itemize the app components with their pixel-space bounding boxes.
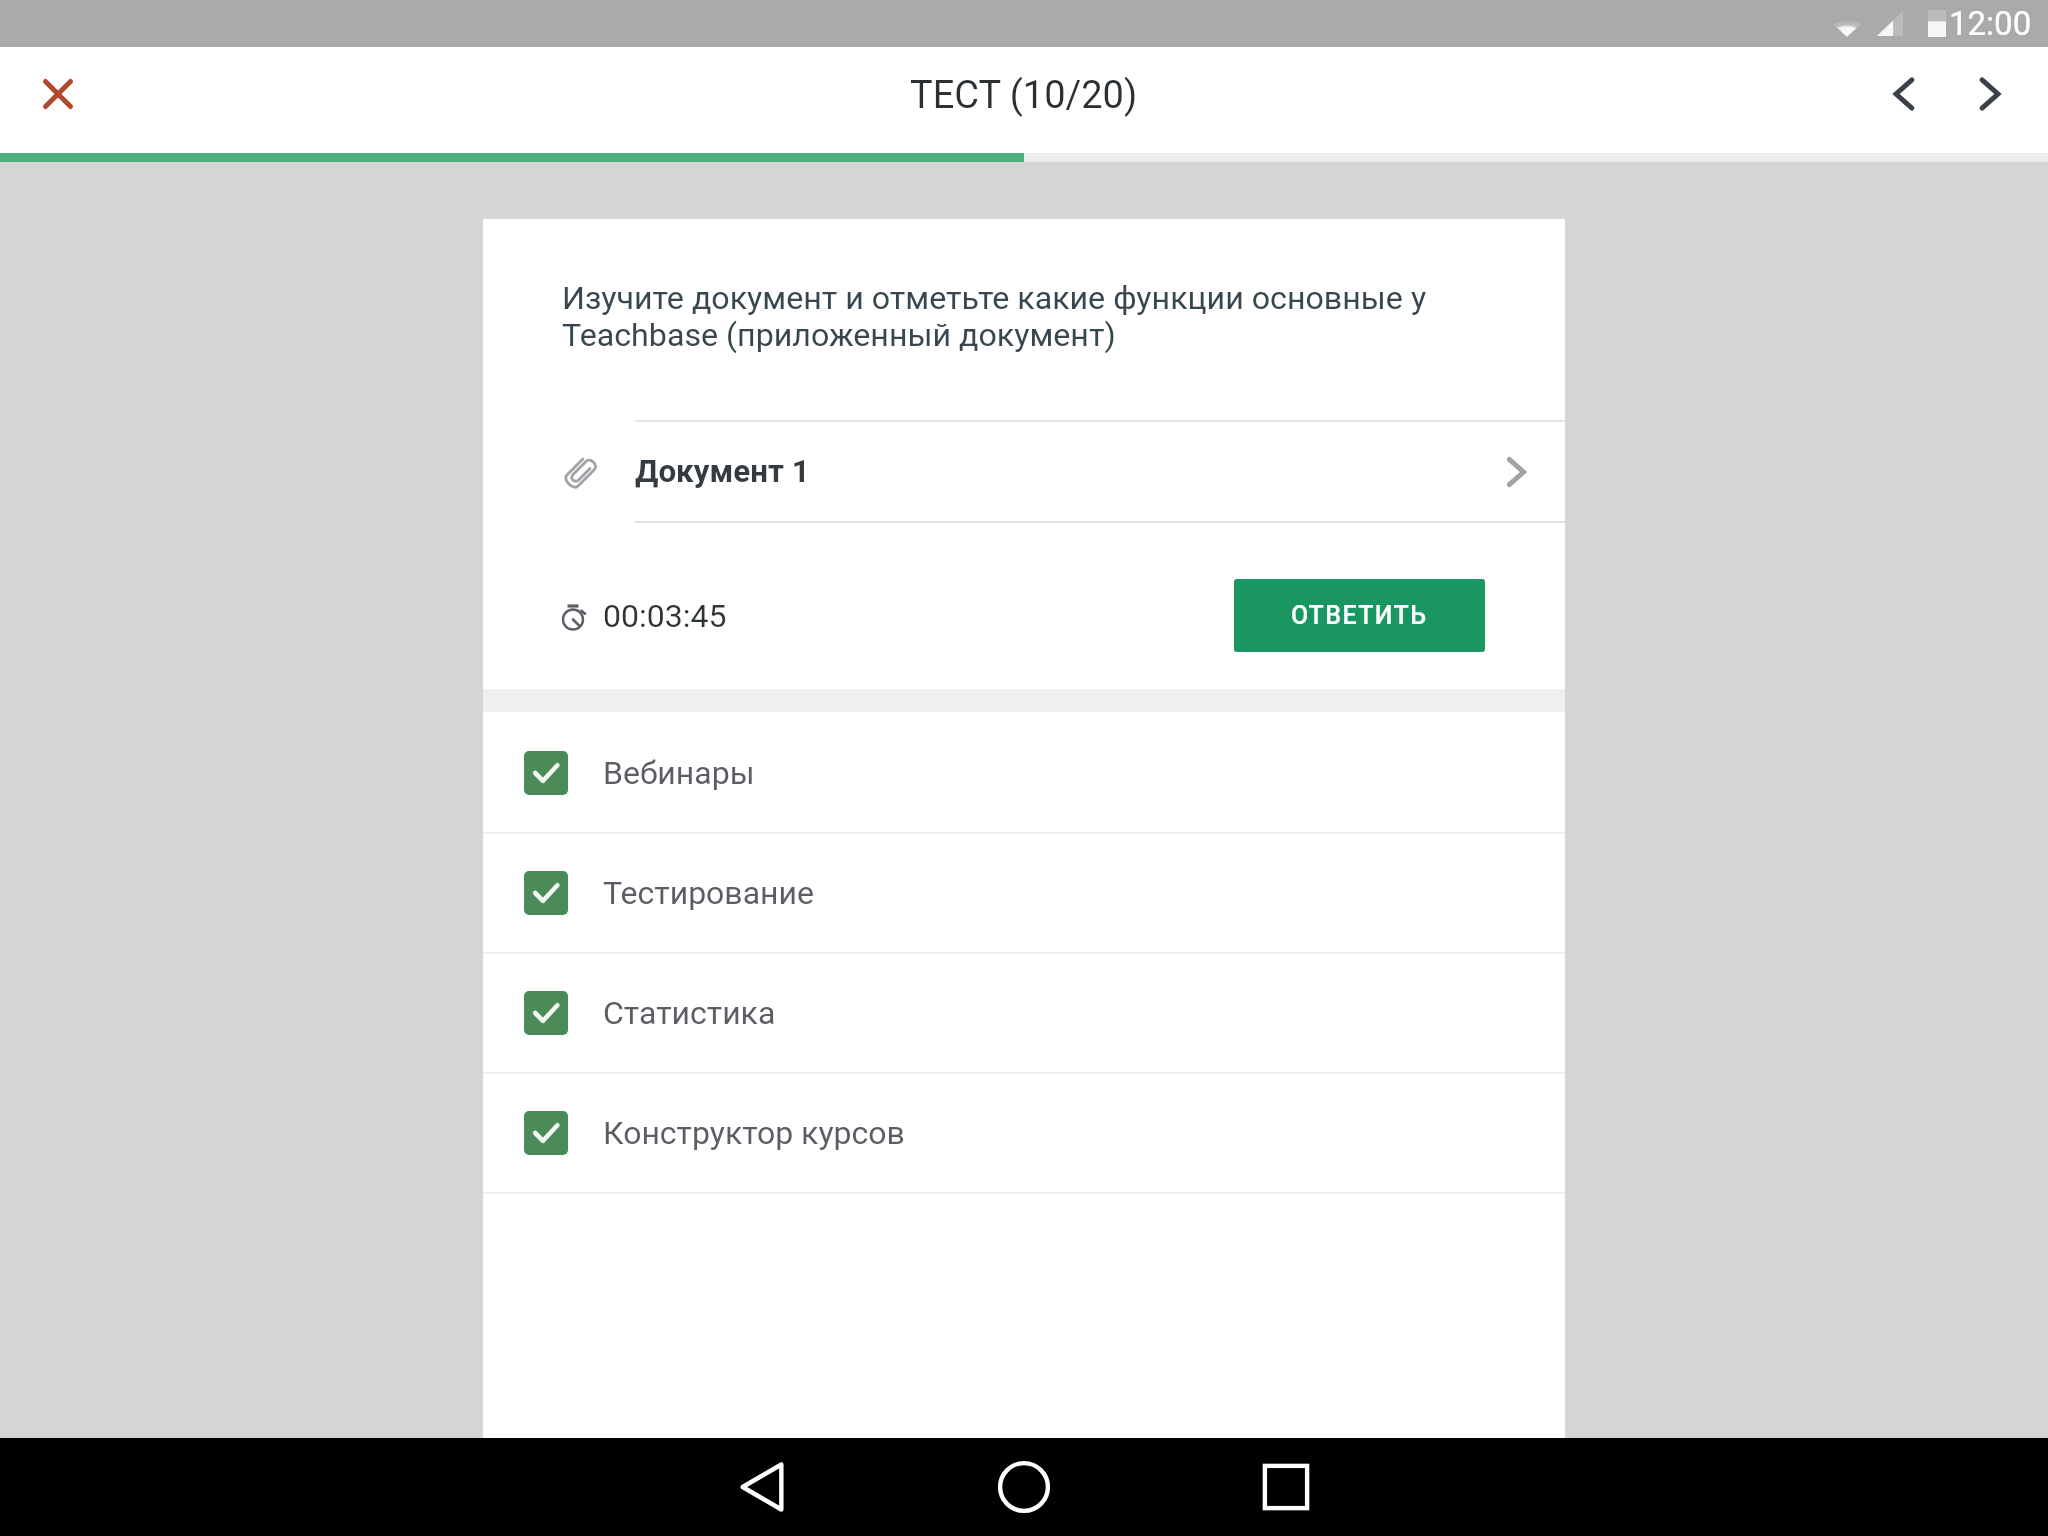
button[interactable]: Back <box>707 1438 817 1536</box>
staticText: Тестирование <box>603 874 814 912</box>
staticText: Статистика <box>603 994 776 1032</box>
staticText: ТЕСТ (10/20) <box>910 73 1138 118</box>
staticText: Изучите документ и отметьте какие функци… <box>562 279 1505 354</box>
staticText: 12:00 <box>1949 4 2032 43</box>
staticText: Вебинары <box>603 754 755 792</box>
button[interactable]: Вебинары <box>483 714 1565 832</box>
staticText: Документ 1 <box>635 453 810 490</box>
button[interactable]: Recent apps <box>1231 1438 1341 1536</box>
button[interactable]: Тестирование <box>483 834 1565 952</box>
button[interactable]: Документ 1 <box>483 422 1565 521</box>
button[interactable]: Home <box>969 1438 1079 1536</box>
button[interactable]: ОТВЕТИТЬ <box>1234 579 1485 652</box>
button[interactable]: Close <box>22 58 94 130</box>
button[interactable]: Статистика <box>483 954 1565 1072</box>
staticText: 00:03:45 <box>603 597 727 635</box>
staticText: Конструктор курсов <box>603 1114 905 1152</box>
button[interactable]: Previous question <box>1868 58 1940 130</box>
staticText: ОТВЕТИТЬ <box>1291 601 1428 630</box>
button[interactable]: Next question <box>1954 58 2026 130</box>
button[interactable]: Конструктор курсов <box>483 1074 1565 1192</box>
